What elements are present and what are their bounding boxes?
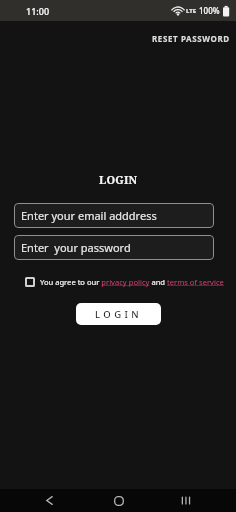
- staticText: Enter your password: [21, 240, 131, 255]
- button[interactable]: LOGIN: [76, 303, 161, 325]
- staticText: 11:00: [26, 5, 50, 17]
- button[interactable]: [112, 494, 125, 507]
- button[interactable]: RESET PASSWORD: [152, 33, 230, 44]
- staticText: 100%: [199, 5, 220, 16]
- staticText: Enter your email adddress: [21, 208, 157, 223]
- staticText: LTE: [186, 7, 197, 15]
- staticText: You agree to our privacy policy and term…: [40, 277, 224, 287]
- button[interactable]: You agree to our privacy policy and term…: [25, 277, 224, 287]
- button[interactable]: Enter your email adddress: [14, 203, 214, 228]
- staticText: LOGIN: [99, 172, 138, 187]
- button[interactable]: [43, 494, 56, 507]
- staticText: RESET PASSWORD: [152, 33, 230, 44]
- button[interactable]: [179, 494, 192, 507]
- button[interactable]: Enter your password: [14, 235, 214, 260]
- staticText: LOGIN: [95, 308, 142, 321]
